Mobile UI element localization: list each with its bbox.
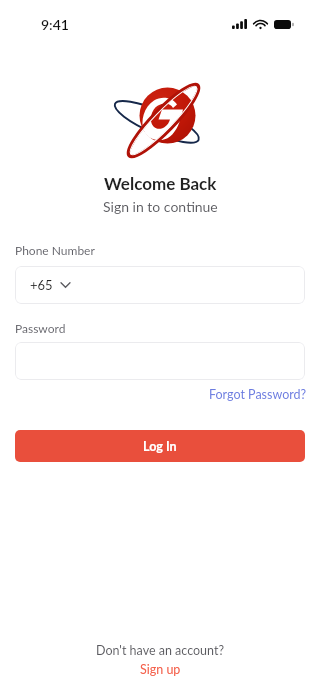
button[interactable] <box>15 342 305 380</box>
staticText: 9:41 <box>41 16 69 33</box>
button[interactable]: Sign up <box>140 662 181 677</box>
staticText: Phone Number <box>15 243 95 257</box>
staticText: Sign up <box>140 662 181 677</box>
staticText: Password <box>15 321 66 335</box>
staticText: +65 <box>30 277 53 293</box>
button[interactable]: Forgot Password? <box>209 387 307 402</box>
button[interactable]: Log In <box>15 430 305 462</box>
staticText: Don't have an account? <box>96 643 225 658</box>
button[interactable]: +65 <box>15 266 305 304</box>
staticText: Sign in to continue <box>103 198 218 215</box>
other: Select country code <box>61 282 70 288</box>
staticText: Log In <box>143 439 177 454</box>
staticText: Welcome Back <box>104 173 217 193</box>
staticText: Forgot Password? <box>209 387 307 402</box>
